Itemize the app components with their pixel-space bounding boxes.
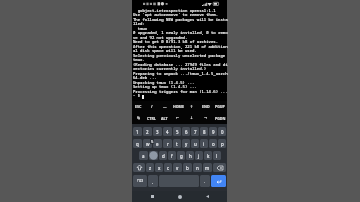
staticText: k (207, 153, 210, 159)
staticText: Preparing to unpack .../tmux_1.4.5_aarch (133, 71, 228, 76)
staticText: PGUP (215, 104, 225, 109)
staticText: 8 (203, 129, 206, 135)
staticText: o (212, 141, 215, 147)
staticText: ↑ (190, 105, 194, 109)
button[interactable]: ↓ (185, 112, 199, 124)
button[interactable]: z (146, 163, 154, 172)
staticText: y (185, 141, 188, 147)
staticText: . (204, 179, 206, 184)
button[interactable]: w (143, 139, 152, 148)
staticText: ↓ (190, 116, 194, 120)
staticText: ?123 (137, 179, 144, 183)
staticText: Selecting previously unselected package (133, 53, 226, 58)
button[interactable]: o (209, 139, 217, 148)
button[interactable]: ?123 (133, 175, 147, 187)
button[interactable]: e (153, 139, 162, 148)
button[interactable]: u (191, 139, 199, 148)
button[interactable]: v (173, 163, 182, 172)
staticText: v (176, 165, 179, 171)
button[interactable]: END (199, 101, 213, 112)
button[interactable]: d (159, 151, 167, 160)
button[interactable]: 8 (200, 127, 208, 136)
button[interactable]: PGDN (213, 112, 227, 124)
button[interactable]: x (155, 163, 163, 172)
staticText: u (194, 141, 197, 147)
button[interactable]: 7 (191, 127, 199, 136)
button[interactable]: c (164, 163, 172, 172)
button[interactable]: j (195, 151, 203, 160)
button[interactable]: → (199, 112, 213, 124)
button[interactable]: ↹ (132, 112, 145, 124)
button[interactable]: Shift (133, 163, 145, 172)
button[interactable]: m (203, 163, 212, 172)
button[interactable]: f (168, 151, 176, 160)
staticText: al disk space will be used. (133, 48, 197, 53)
staticText: After this operation, 221 kB of addition (133, 44, 228, 49)
button[interactable]: p (218, 139, 226, 148)
button[interactable]: Backspace (213, 163, 226, 172)
button[interactable]: Enter (211, 175, 226, 187)
staticText: w (146, 141, 150, 147)
staticText: / (151, 104, 153, 109)
staticText: q (136, 141, 139, 147)
staticText: END (202, 104, 210, 109)
staticText: 0 (221, 129, 224, 135)
button[interactable]: Back (199, 191, 215, 202)
button[interactable]: t (173, 139, 181, 148)
button[interactable]: 2 (143, 127, 152, 136)
button[interactable]: i (200, 139, 208, 148)
button[interactable]: Recents (144, 191, 160, 202)
button[interactable]: , (148, 175, 158, 187)
button[interactable]: / (145, 101, 158, 112)
button[interactable]: 9 (209, 127, 217, 136)
staticText: — (163, 104, 167, 109)
staticText: b (186, 165, 189, 171)
button[interactable]: y (182, 139, 190, 148)
button[interactable]: 0 (218, 127, 226, 136)
staticText: d (162, 153, 165, 159)
button[interactable]: r (163, 139, 172, 148)
button[interactable]: g (177, 151, 185, 160)
staticText: rectories currently installed.) (133, 66, 207, 71)
button[interactable]: . (200, 175, 210, 187)
button[interactable]: 1 (133, 127, 142, 136)
button[interactable]: CTRL (145, 112, 158, 124)
button[interactable]: ↑ (185, 101, 199, 112)
button[interactable]: Home (172, 191, 188, 202)
staticText: e (156, 141, 159, 147)
button[interactable]: 4 (163, 127, 172, 136)
staticText: Need to get 0 B/91.3 kB of archives. (133, 39, 219, 44)
staticText: m (205, 165, 210, 171)
button[interactable]: 5 (173, 127, 181, 136)
button[interactable]: ESC (132, 101, 145, 112)
staticText: tmux (133, 26, 148, 31)
button[interactable]: b (183, 163, 192, 172)
button[interactable]: n (193, 163, 202, 172)
staticText: Setting up tmux (1.4.5) ... (133, 84, 197, 89)
button[interactable]: — (158, 101, 171, 112)
staticText: z (149, 165, 152, 171)
staticText: 0 upgraded, 1 newly installed, 0 to remo (133, 30, 228, 35)
button[interactable]: q (133, 139, 142, 148)
button[interactable]: ALT (158, 112, 171, 124)
button[interactable]: ← (171, 112, 185, 124)
button[interactable] (149, 151, 158, 160)
staticText: h (189, 153, 192, 159)
button[interactable]: 6 (182, 127, 190, 136)
staticText: t (176, 141, 178, 147)
button[interactable]: PGUP (213, 101, 227, 112)
button[interactable]: a (139, 151, 148, 160)
button[interactable]: k (204, 151, 212, 160)
staticText: 6 (185, 129, 188, 135)
staticText: , (152, 179, 154, 184)
button[interactable]: 3 (153, 127, 162, 136)
button[interactable]: h (186, 151, 194, 160)
staticText: 64.deb ... (133, 75, 157, 80)
staticText: 5 (151, 139, 154, 144)
staticText: c (167, 165, 170, 171)
staticText: g (180, 153, 183, 159)
button[interactable]: l (213, 151, 221, 160)
staticText: 7 (194, 129, 197, 135)
button[interactable]: HOME (171, 101, 185, 112)
